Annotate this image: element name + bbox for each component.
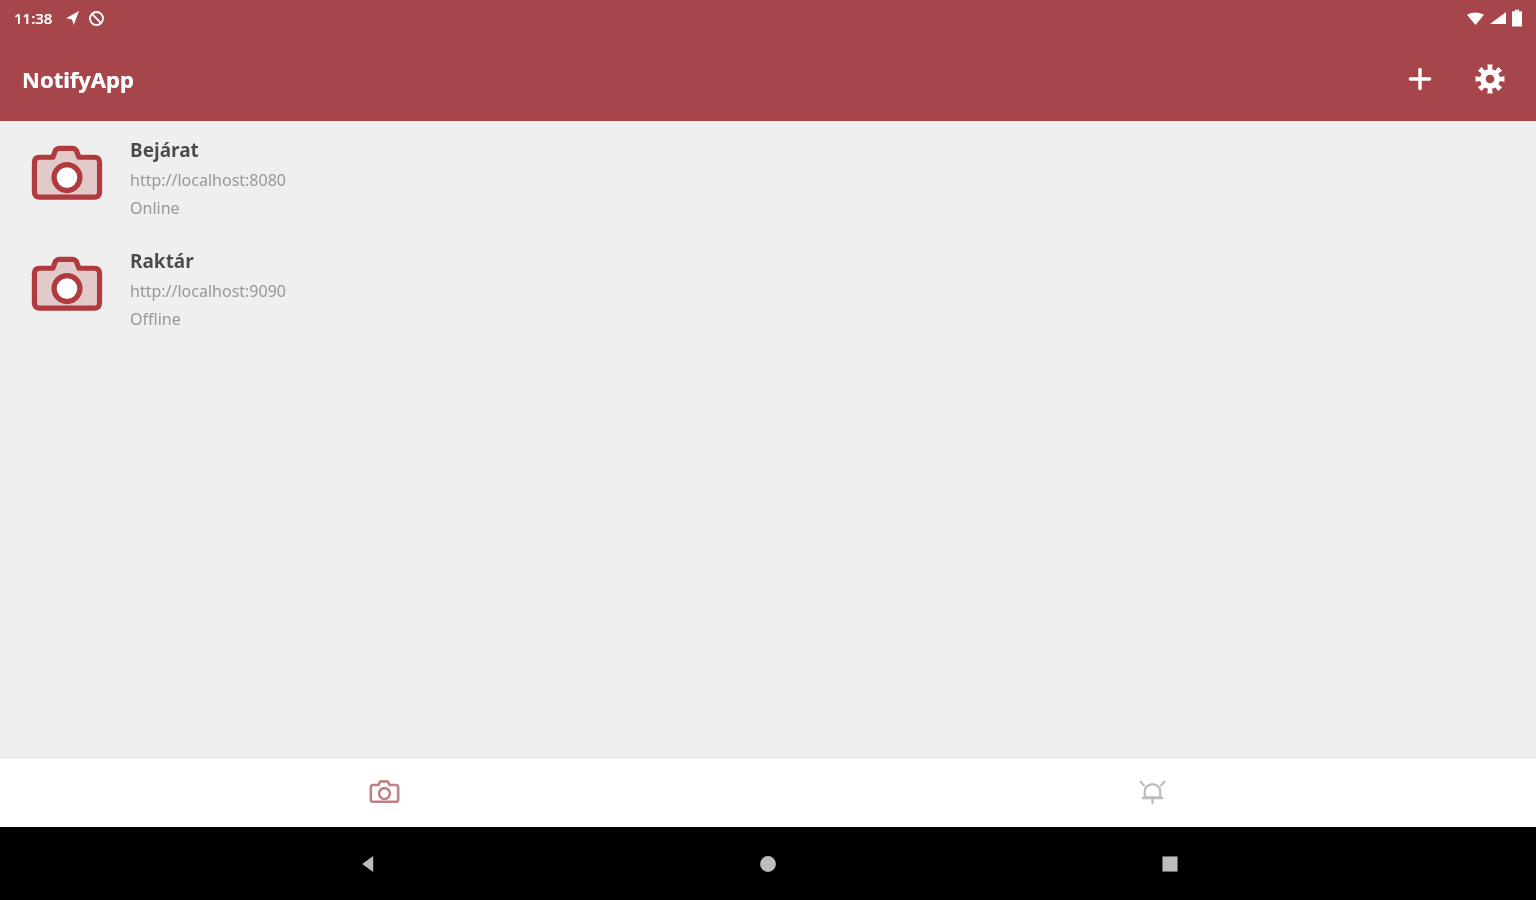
staticText: http://localhost:8080	[130, 169, 286, 191]
button[interactable]: Recent apps	[1135, 829, 1205, 899]
staticText: Bejárat	[130, 137, 199, 163]
button[interactable]: Raktár	[0, 239, 1536, 336]
staticText: 11:38	[14, 8, 53, 28]
button[interactable]: Back	[332, 829, 402, 899]
staticText: Offline	[130, 308, 181, 330]
staticText: Online	[130, 197, 180, 219]
button[interactable]: Settings	[1462, 51, 1518, 107]
staticText: http://localhost:9090	[130, 280, 286, 302]
staticText: Raktár	[130, 248, 194, 274]
button[interactable]: Bejárat	[0, 128, 1536, 225]
button[interactable]: Home	[733, 829, 803, 899]
button[interactable]: Add server	[1392, 51, 1448, 107]
staticText: NotifyApp	[22, 64, 134, 94]
button[interactable]: Cameras	[0, 757, 768, 827]
button[interactable]: Notifications	[768, 757, 1536, 827]
